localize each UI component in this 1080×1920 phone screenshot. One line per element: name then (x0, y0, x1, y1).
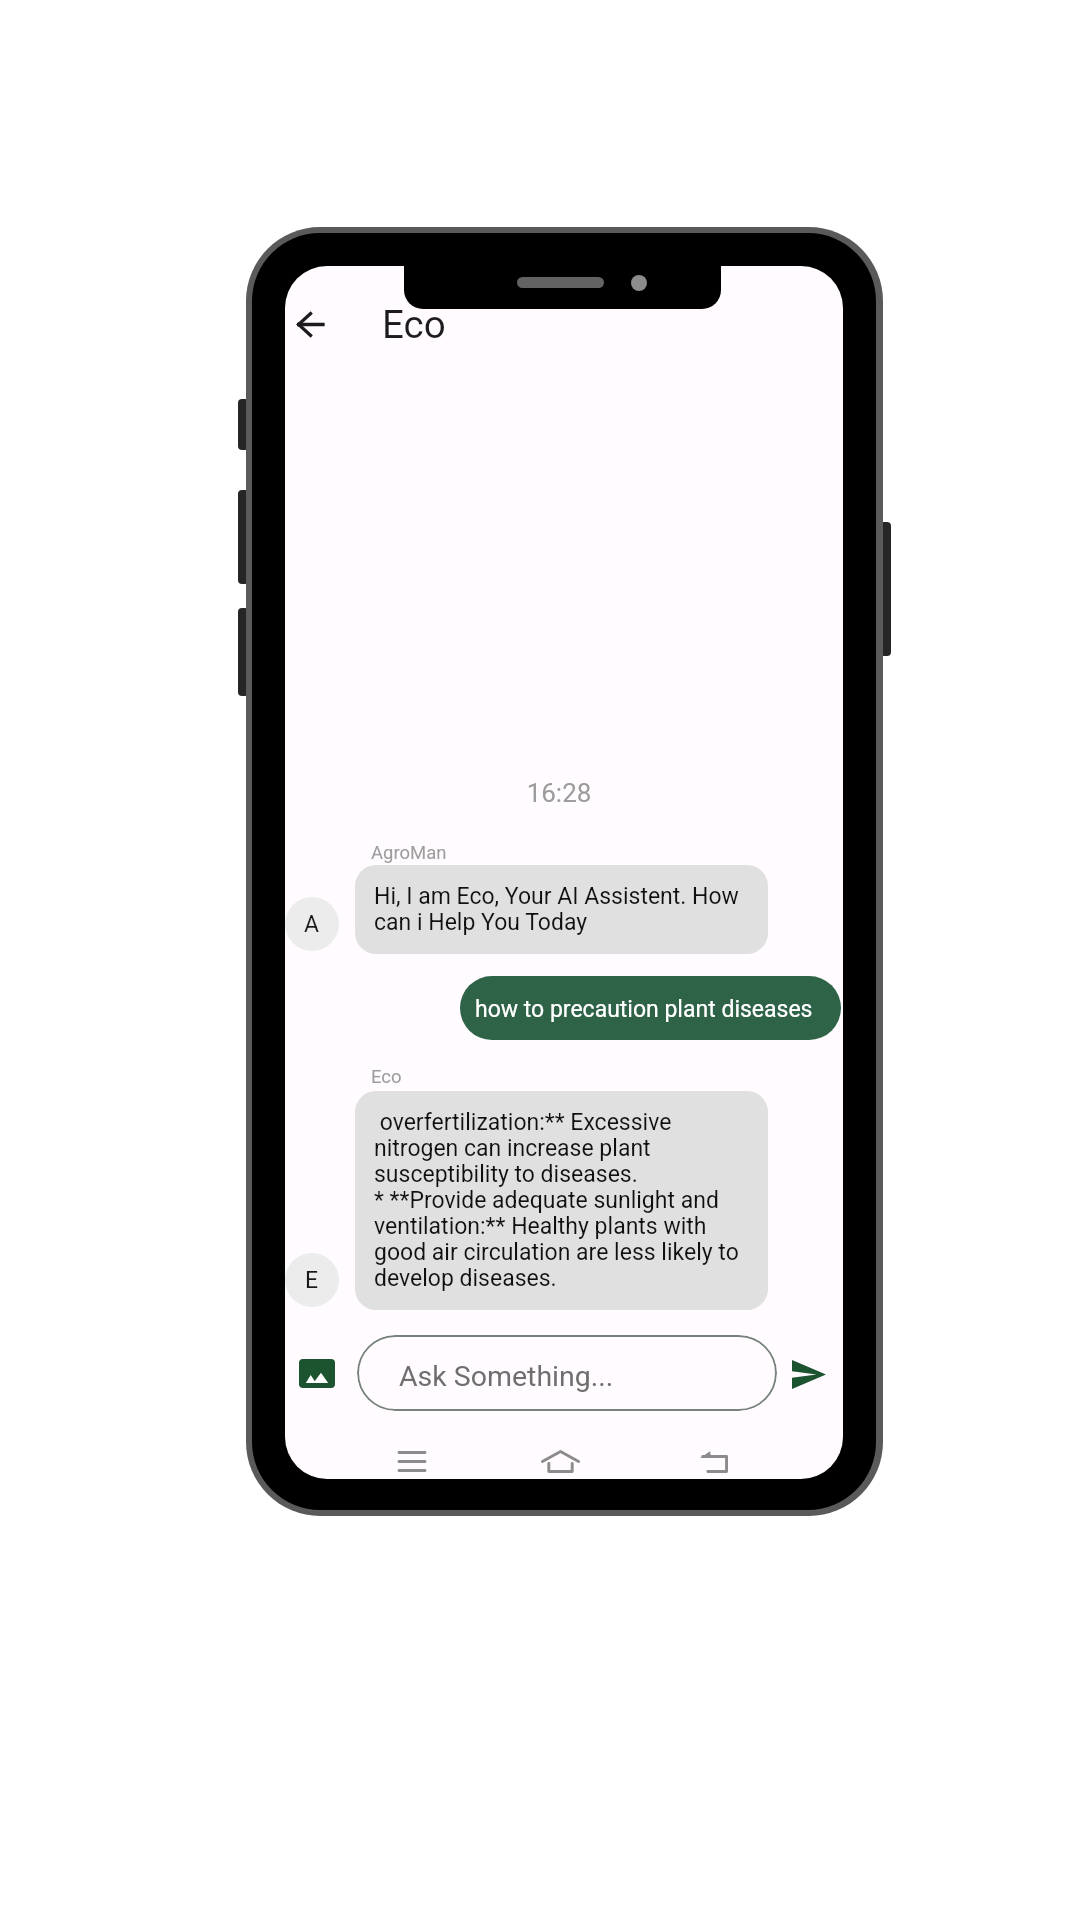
button[interactable]: Back (285, 298, 336, 350)
button[interactable]: Hi, I am Eco, Your AI Assistent. How can… (355, 865, 768, 954)
staticText: AgroMan (371, 842, 447, 864)
staticText: Eco (382, 302, 446, 347)
button[interactable]: Attach image (299, 1359, 335, 1388)
button[interactable]: A (285, 897, 339, 951)
button[interactable]: Ask Something... (357, 1335, 777, 1411)
button[interactable]: Back (690, 1438, 738, 1479)
staticText: Ask Something... (399, 1360, 614, 1393)
button[interactable]: Recents (388, 1438, 436, 1479)
button[interactable]: Home (536, 1438, 584, 1479)
staticText: Hi, I am Eco, Your AI Assistent. How can… (374, 883, 756, 936)
button[interactable]: E (285, 1253, 339, 1307)
staticText: 16:28 (285, 778, 838, 808)
button[interactable]: Send (786, 1354, 832, 1394)
staticText: E (305, 1267, 319, 1294)
staticText: Eco (371, 1066, 402, 1088)
button[interactable]: overfertilization:** Excessive nitrogen … (355, 1091, 768, 1310)
staticText: A (304, 911, 320, 938)
button[interactable]: how to precaution plant diseases (460, 976, 841, 1040)
staticText: how to precaution plant diseases (475, 996, 813, 1023)
staticText: overfertilization:** Excessive nitrogen … (374, 1109, 760, 1292)
